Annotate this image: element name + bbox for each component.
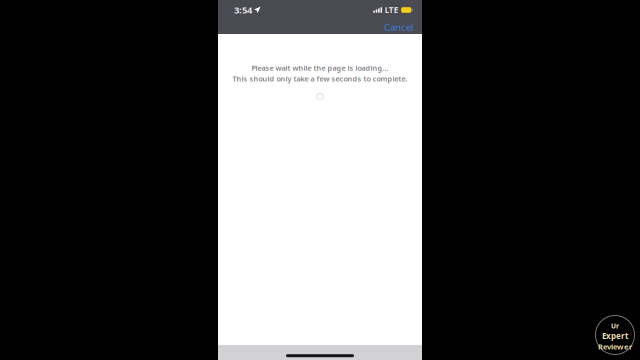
staticText: Reviewer: [598, 341, 632, 352]
staticText: Cancel: [384, 20, 413, 34]
staticText: Expert: [602, 330, 628, 341]
staticText: This should only take a few seconds to c…: [232, 74, 407, 84]
staticText: 3:54: [234, 4, 252, 16]
button[interactable]: Cancel: [381, 19, 416, 35]
staticText: LTE: [385, 4, 399, 16]
staticText: Ur: [611, 321, 619, 330]
staticText: Please wait while the page is loading...: [251, 63, 388, 73]
